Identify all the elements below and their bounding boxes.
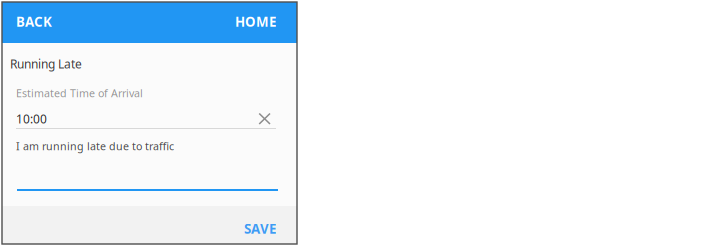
button[interactable]: I am running late due to traffic	[2, 2, 297, 244]
staticText: SAVE	[244, 220, 276, 237]
button[interactable]: Estimated Time of Arrival	[2, 2, 297, 244]
button[interactable]: BACK	[2, 2, 62, 43]
staticText: Estimated Time of Arrival	[16, 86, 143, 100]
staticText: BACK	[16, 13, 52, 30]
button[interactable]: HOME	[225, 2, 297, 43]
button[interactable]: Clear estimated time of arrival	[250, 104, 279, 133]
staticText: 10:00	[16, 111, 47, 127]
staticText: I am running late due to traffic	[16, 139, 174, 153]
button[interactable]: SAVE	[230, 206, 297, 244]
staticText: Running Late	[10, 56, 82, 72]
staticText: HOME	[235, 13, 276, 30]
